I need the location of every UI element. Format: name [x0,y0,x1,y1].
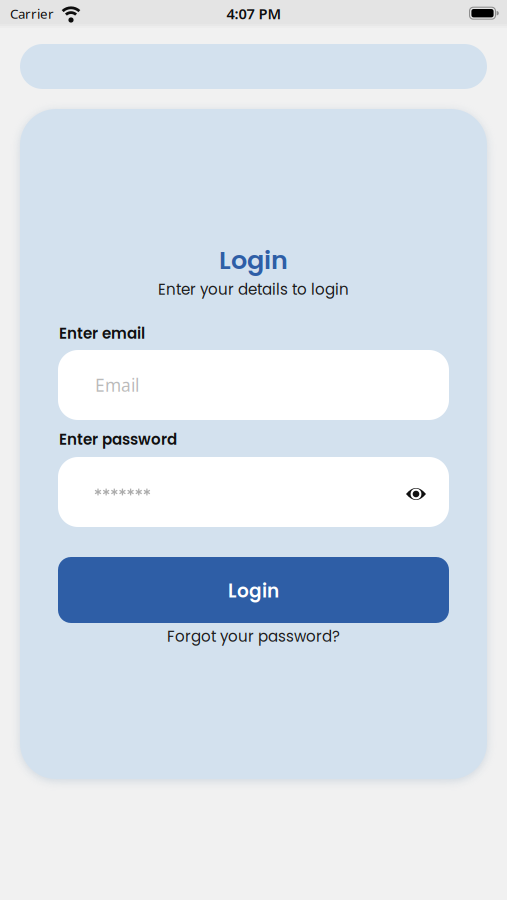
staticText: 4:07 PM [226,4,281,23]
staticText: Forgot your password? [167,626,340,647]
button[interactable] [58,457,449,527]
button[interactable]: Email [58,350,449,420]
staticText: Login [219,242,288,278]
button[interactable]: Forgot your password? [167,626,340,647]
button[interactable]: Login [58,557,449,623]
staticText: Enter password [59,429,177,450]
staticText: Enter your details to login [158,279,349,300]
staticText: Enter email [59,323,145,344]
staticText: Login [228,578,279,604]
staticText: Email [95,373,139,396]
button[interactable] [398,476,434,512]
staticText: Carrier [10,5,54,22]
